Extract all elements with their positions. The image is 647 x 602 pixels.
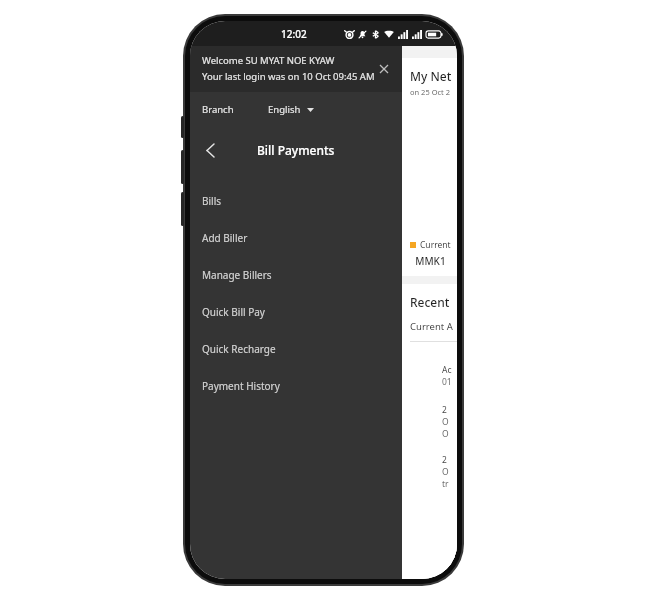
staticText: on 25 Oct 2 [410, 87, 451, 97]
staticText: Payment History [202, 379, 280, 393]
button[interactable]: Add Biller [190, 219, 402, 256]
staticText: Current A [410, 320, 453, 333]
staticText: 2 [442, 454, 447, 466]
staticText: Bills [202, 194, 222, 208]
button[interactable]: Close [374, 59, 394, 79]
staticText: tr [442, 478, 449, 490]
button[interactable]: Manage Billers [190, 256, 402, 293]
button[interactable]: Payment History [190, 367, 402, 404]
button[interactable]: Branch [202, 99, 234, 120]
staticText: Quick Bill Pay [202, 305, 265, 319]
staticText: O [442, 416, 449, 428]
button[interactable]: English [268, 99, 314, 120]
staticText: Bill Payments [257, 142, 335, 158]
staticText: O [442, 428, 449, 440]
staticText: Add Biller [202, 231, 248, 245]
staticText: Recent A [410, 294, 457, 310]
button[interactable]: Back [196, 136, 224, 164]
staticText: O [442, 466, 449, 478]
staticText: Current [420, 239, 453, 251]
staticText: 01 [442, 376, 452, 388]
staticText: Branch [202, 103, 234, 116]
staticText: 12:02 [281, 27, 307, 41]
button[interactable]: Quick Bill Pay [190, 293, 402, 330]
staticText: Welcome SU MYAT NOE KYAW [202, 54, 335, 67]
staticText: MMK1 [410, 254, 446, 268]
button[interactable]: Quick Recharge [190, 330, 402, 367]
staticText: Your last login was on 10 Oct 09:45 AM [202, 70, 375, 83]
button[interactable]: Bills [190, 182, 402, 219]
staticText: Manage Billers [202, 268, 272, 282]
staticText: Quick Recharge [202, 342, 276, 356]
staticText: 2 [442, 404, 447, 416]
staticText: Ac [442, 364, 452, 376]
staticText: My Net W [410, 68, 457, 84]
staticText: English [268, 103, 301, 116]
